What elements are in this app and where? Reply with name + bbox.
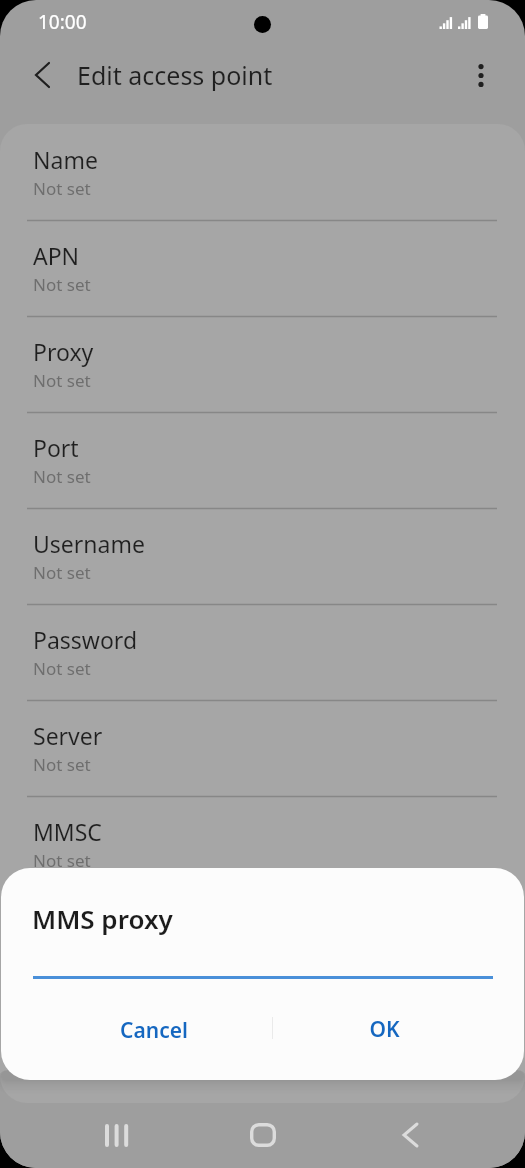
staticText: Cancel (120, 1016, 188, 1045)
staticText: APN (33, 240, 80, 271)
staticText: Not set (33, 561, 91, 584)
staticText: MMS proxy (33, 912, 154, 943)
staticText: Not set (33, 753, 91, 776)
button[interactable]: OK (277, 999, 491, 1059)
button[interactable]: Username (0, 508, 525, 604)
button[interactable]: Password (0, 604, 525, 700)
staticText: Not set (33, 657, 91, 680)
button[interactable]: Back (381, 1106, 439, 1164)
button[interactable]: Recents (87, 1106, 145, 1164)
button[interactable]: APN (0, 220, 525, 316)
button[interactable]: More options (458, 52, 504, 98)
button[interactable]: Cancel (21, 1000, 286, 1060)
staticText: Not set (33, 273, 91, 296)
button[interactable]: Proxy (0, 316, 525, 412)
staticText: Edit access point (77, 58, 273, 92)
button[interactable]: Name (0, 124, 525, 220)
staticText: Proxy (33, 336, 94, 367)
button[interactable]: Navigate up (19, 52, 65, 98)
staticText: Not set (33, 369, 91, 392)
button[interactable]: MMS proxy (0, 892, 525, 988)
staticText: Not set (33, 177, 91, 200)
staticText: Server (33, 720, 103, 751)
staticText: Password (33, 624, 138, 655)
staticText: Not set (33, 465, 91, 488)
staticText: Username (33, 528, 145, 559)
button[interactable]: Port (0, 412, 525, 508)
button[interactable]: Home (234, 1106, 292, 1164)
staticText: MMS proxy (32, 901, 173, 936)
button[interactable]: Server (0, 700, 525, 796)
staticText: Not set (33, 849, 91, 872)
staticText: 10:00 (38, 9, 87, 35)
button[interactable]: MMSC (0, 796, 525, 892)
button[interactable]: MMS port (0, 988, 525, 1084)
staticText: MMSC (33, 816, 102, 847)
staticText: OK (369, 1015, 400, 1044)
staticText: MMS port (33, 1008, 140, 1039)
staticText: Port (33, 432, 79, 463)
staticText: Name (33, 144, 98, 175)
